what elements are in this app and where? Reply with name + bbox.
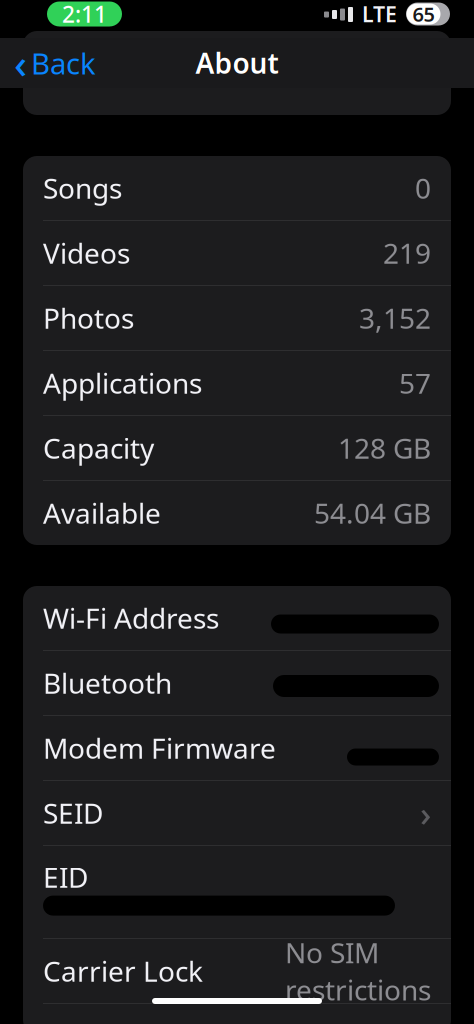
staticText: Modem Firmware: [43, 729, 276, 767]
staticText: Videos: [43, 234, 130, 272]
button[interactable]: Songs: [23, 156, 451, 220]
staticText: Carrier Lock: [43, 952, 203, 990]
staticText: Capacity: [43, 429, 154, 467]
staticText: 2:11: [62, 0, 107, 29]
staticText: Coverage Expired: [43, 44, 273, 82]
staticText: 57: [399, 364, 431, 402]
button[interactable]: Photos: [23, 286, 451, 350]
button[interactable]: Coverage Expired: [23, 31, 451, 95]
staticText: Applications: [43, 364, 202, 402]
button[interactable]: Modem Firmware: [23, 716, 451, 780]
staticText: ‹: [14, 36, 27, 89]
button[interactable]: Bluetooth: [23, 651, 451, 715]
button[interactable]: Capacity: [23, 416, 451, 480]
staticText: 54.04 GB: [314, 494, 431, 532]
button[interactable]: ‹: [0, 41, 110, 85]
button[interactable]: Carrier Lock: [23, 939, 451, 1003]
button[interactable]: Applications: [23, 351, 451, 415]
staticText: 3,152: [359, 299, 431, 337]
staticText: Songs: [43, 169, 122, 207]
staticText: ›: [420, 790, 431, 836]
staticText: LTE: [362, 0, 397, 28]
staticText: Photos: [43, 299, 134, 337]
staticText: 0: [415, 169, 431, 207]
staticText: SEID: [43, 794, 103, 832]
staticText: Back: [31, 43, 96, 82]
button[interactable]: SEID: [23, 781, 451, 845]
staticText: EID: [43, 858, 88, 896]
staticText: 219: [383, 234, 431, 272]
staticText: About: [195, 44, 278, 82]
button[interactable]: Wi-Fi Address: [23, 586, 451, 650]
button[interactable]: Videos: [23, 221, 451, 285]
staticText: No SIM restrictions: [285, 934, 431, 1008]
staticText: 65: [412, 1, 434, 27]
button[interactable]: EID: [23, 846, 451, 938]
staticText: 128 GB: [338, 429, 431, 467]
staticText: Bluetooth: [43, 664, 172, 702]
staticText: Wi-Fi Address: [43, 599, 219, 637]
button[interactable]: Available: [23, 481, 451, 545]
staticText: Available: [43, 494, 161, 532]
